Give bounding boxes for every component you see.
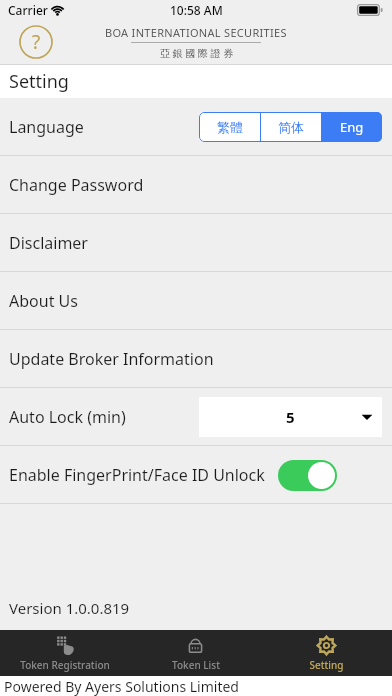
button[interactable]: Change Password <box>0 156 392 214</box>
button[interactable]: 简体 <box>261 112 321 142</box>
button[interactable]: Auto Lock (min) <box>0 388 392 446</box>
button[interactable]: Help <box>19 25 53 59</box>
staticText: Eng <box>340 118 364 136</box>
staticText: 10:58 AM <box>170 2 223 18</box>
staticText: Update Broker Information <box>9 348 214 370</box>
staticText: ? <box>32 29 41 55</box>
staticText: Version 1.0.0.819 <box>9 598 130 618</box>
staticText: Carrier <box>8 2 48 18</box>
staticText: Auto Lock (min) <box>9 406 126 428</box>
staticText: Setting <box>309 658 344 672</box>
button[interactable]: Setting <box>261 630 392 676</box>
button[interactable]: About Us <box>0 272 392 330</box>
staticText: 5 <box>286 407 295 427</box>
button[interactable]: Eng <box>322 112 382 142</box>
button[interactable]: Enable FingerPrint or Face ID Unlock <box>278 460 337 491</box>
button[interactable]: Language <box>0 98 392 156</box>
staticText: Powered By Ayers Solutions Limited <box>4 677 239 696</box>
staticText: Enable FingerPrint/Face ID Unlock <box>9 464 265 486</box>
staticText: 简体 <box>278 119 304 135</box>
staticText: Language <box>9 116 84 138</box>
button[interactable]: Enable FingerPrint/Face ID Unlock <box>0 446 392 504</box>
button[interactable]: Update Broker Information <box>0 330 392 388</box>
button[interactable]: Disclaimer <box>0 214 392 272</box>
staticText: Token List <box>172 658 220 672</box>
staticText: 亞 銀 國 際 證 券 <box>160 46 233 60</box>
button[interactable]: 5 <box>199 397 382 437</box>
staticText: BOA INTERNATIONAL SECURITIES <box>105 25 287 40</box>
staticText: Token Registration <box>20 658 110 672</box>
button[interactable]: Token Registration <box>0 630 130 676</box>
button[interactable]: 繁體 <box>199 112 260 142</box>
staticText: Disclaimer <box>9 232 88 254</box>
button[interactable]: Token List <box>130 630 261 676</box>
staticText: 繁體 <box>217 119 243 135</box>
staticText: Change Password <box>9 174 144 196</box>
staticText: About Us <box>9 290 78 312</box>
staticText: Setting <box>9 69 69 94</box>
